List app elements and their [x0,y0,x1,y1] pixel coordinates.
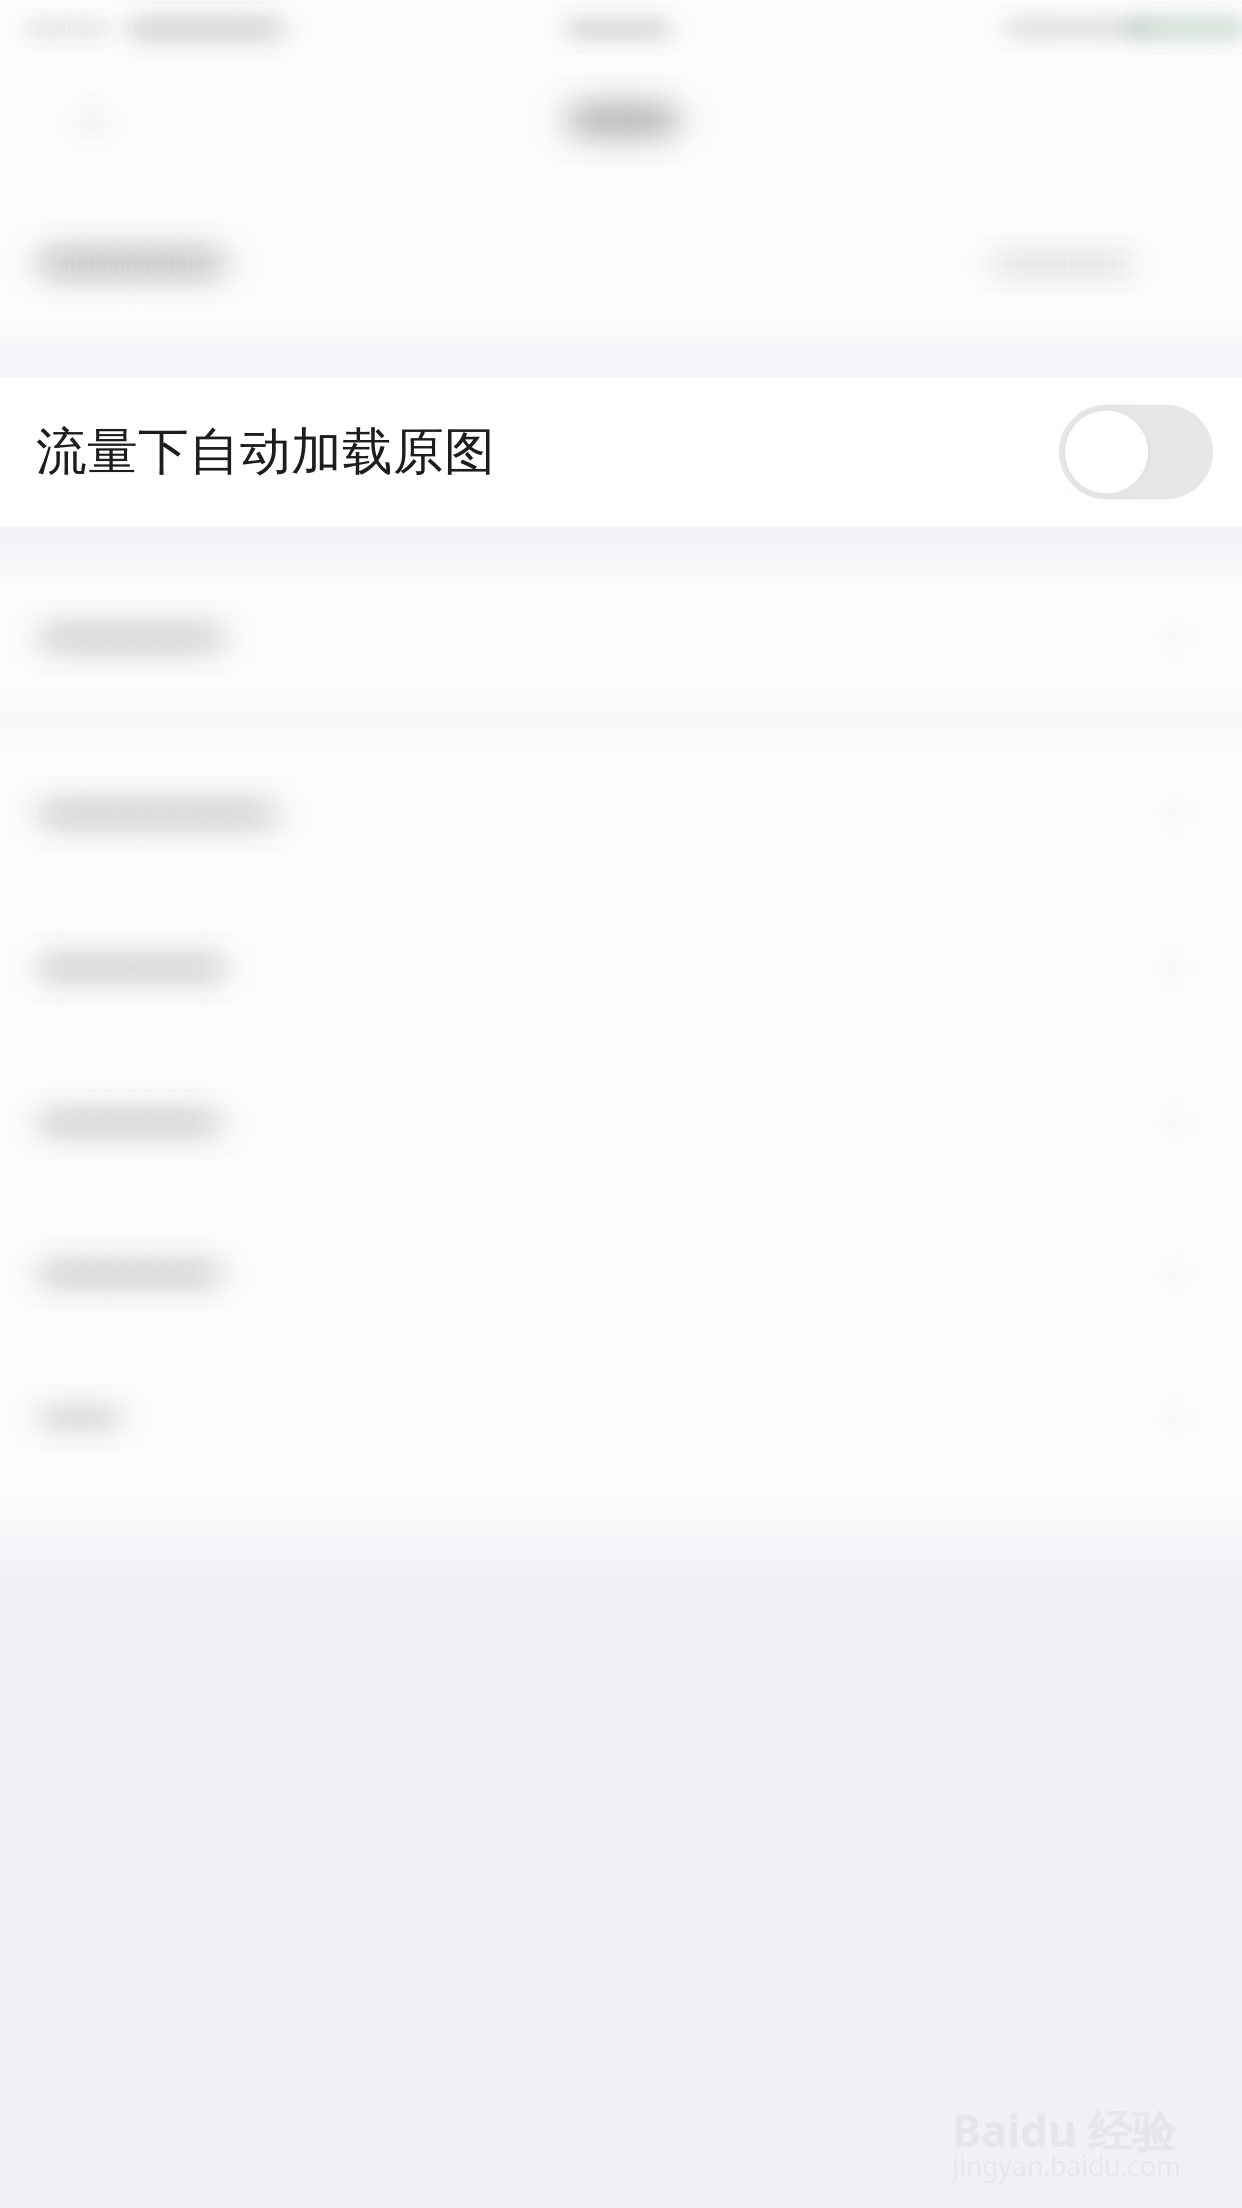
button[interactable]: 设置项 [0,1199,1242,1344]
button[interactable]: 设置项 [0,200,1242,318]
staticText: Baidu 经验 [952,2101,1176,2160]
button[interactable]: 流量下自动加载原图 [0,377,1242,527]
staticText: 流量下自动加载原图 [36,421,495,483]
button[interactable]: 设置项 [0,579,1242,688]
button[interactable]: 设置项 [0,1048,1242,1199]
button[interactable]: 设置项 [0,738,1242,893]
staticText: jingyan.baidu.com [952,2148,1181,2183]
button[interactable]: 设置项 [0,893,1242,1048]
